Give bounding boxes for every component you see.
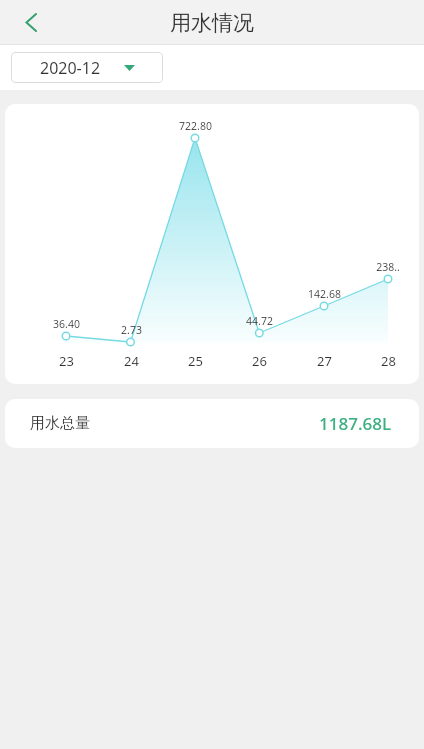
button[interactable]	[0, 0, 45, 45]
staticText: 24	[124, 352, 139, 370]
staticText: 用水总量	[30, 414, 90, 433]
staticText: 2020-12	[40, 57, 101, 79]
staticText: 1187.68L	[319, 412, 392, 435]
staticText: 28	[381, 352, 396, 370]
staticText: 27	[317, 352, 332, 370]
staticText: 25	[188, 352, 203, 370]
staticText: 238..	[376, 260, 400, 274]
staticText: 722.80	[179, 119, 212, 133]
button[interactable]: 用水总量	[5, 399, 419, 448]
staticText: 23	[59, 352, 74, 370]
staticText: 2.73	[121, 323, 142, 337]
staticText: 26	[252, 352, 267, 370]
staticText: 36.40	[53, 317, 80, 331]
button[interactable]: 2020-12	[11, 52, 163, 83]
staticText: 142.68	[308, 287, 341, 301]
staticText: 44.72	[246, 314, 273, 328]
staticText: 用水情况	[170, 10, 254, 36]
